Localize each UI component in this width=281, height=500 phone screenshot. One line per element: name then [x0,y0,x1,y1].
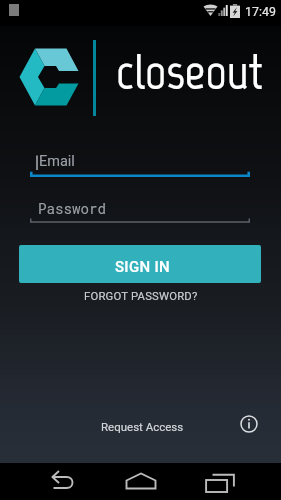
staticText: closeout [116,40,263,102]
staticText: Email [39,153,75,170]
button[interactable]: Request Access [101,420,184,433]
button[interactable]: Back [43,463,83,500]
button[interactable]: Home [121,463,161,500]
button[interactable]: Recent apps [200,463,240,500]
staticText: FORGOT PASSWORD? [84,290,198,303]
button[interactable]: SIGN IN [19,245,261,283]
button[interactable]: FORGOT PASSWORD? [0,287,281,305]
button[interactable]: Email [30,152,250,177]
button[interactable]: Info [238,413,260,435]
staticText: Password [38,199,107,218]
button[interactable]: Password [30,198,250,223]
staticText: 17:49 [245,4,276,19]
staticText: Request Access [101,420,184,433]
staticText: SIGN IN [115,258,170,276]
